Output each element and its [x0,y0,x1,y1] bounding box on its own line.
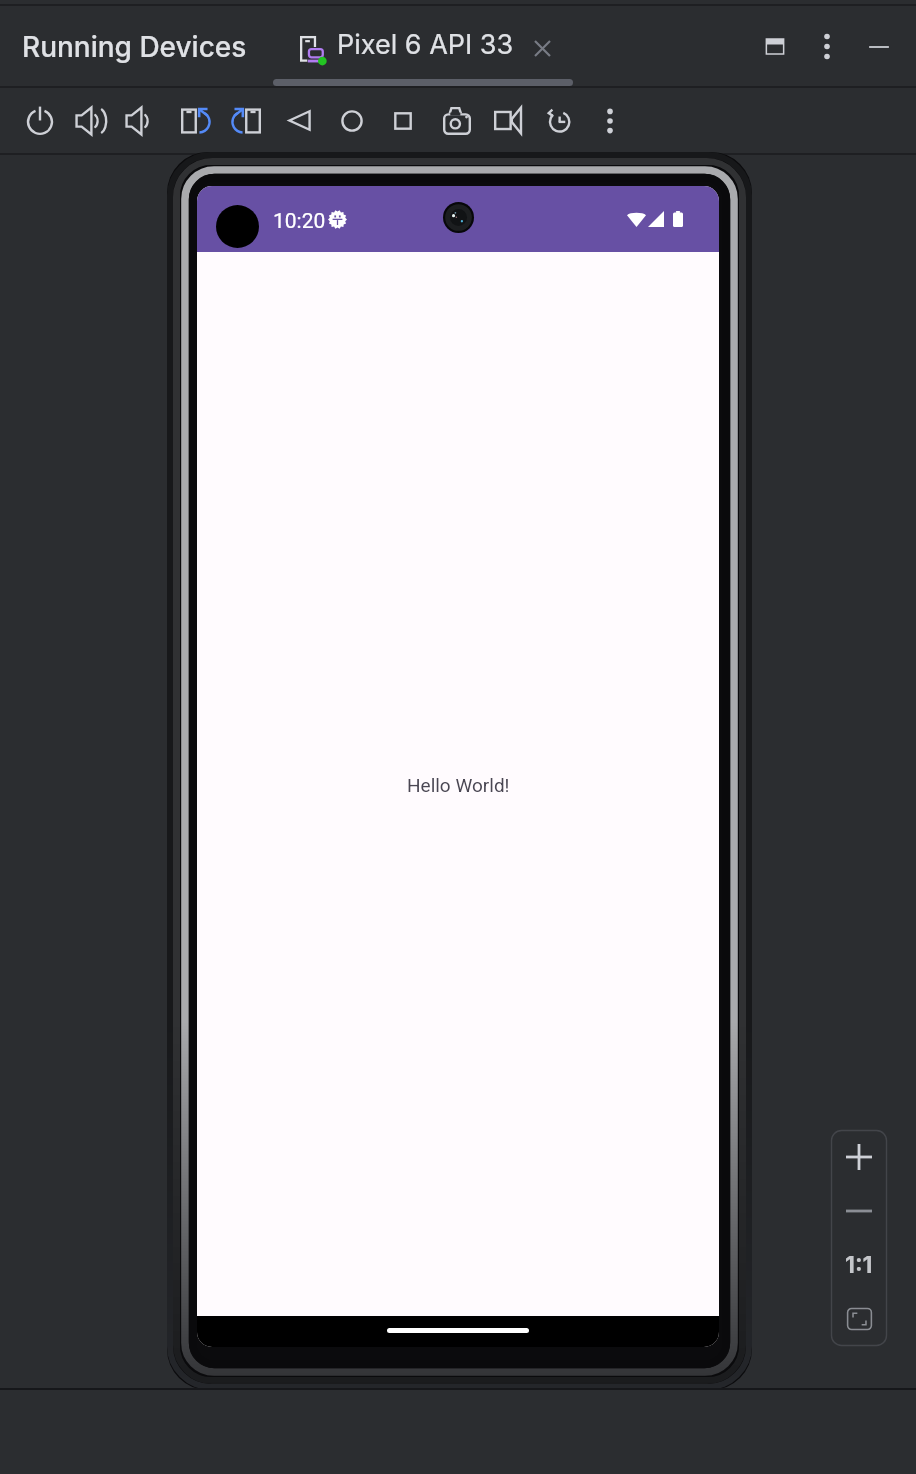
staticText: 10:20 [273,209,326,234]
button[interactable]: Fit to window [831,1292,887,1346]
button[interactable]: Take screenshot [433,88,481,153]
staticText: Hello World! [407,774,510,796]
staticText: 1:1 [845,1251,873,1279]
button[interactable]: Actual size [831,1238,887,1292]
button[interactable]: Power [16,88,64,153]
button[interactable]: Volume up [66,88,114,153]
button[interactable]: Restore [534,88,582,153]
button[interactable]: Rotate right [223,88,271,153]
button[interactable]: Volume down [116,88,164,153]
button[interactable]: Zoom out [831,1184,887,1238]
button[interactable]: Pixel 6 API 33 [300,26,557,70]
button[interactable]: Back [275,88,323,153]
button[interactable]: More options [803,22,851,70]
button[interactable]: Rotate left [171,88,219,153]
button[interactable]: More actions [586,88,634,153]
button[interactable]: Home [328,88,376,153]
button[interactable]: Overview [379,88,427,153]
staticText: Pixel 6 API 33 [337,28,514,61]
staticText: Running Devices [22,30,247,64]
button[interactable]: Split window [751,22,799,70]
button[interactable]: Hide tool window [855,22,903,70]
button[interactable]: Zoom in [831,1130,887,1184]
button[interactable]: Close tab [527,33,557,63]
button[interactable]: Record screen [483,88,531,153]
